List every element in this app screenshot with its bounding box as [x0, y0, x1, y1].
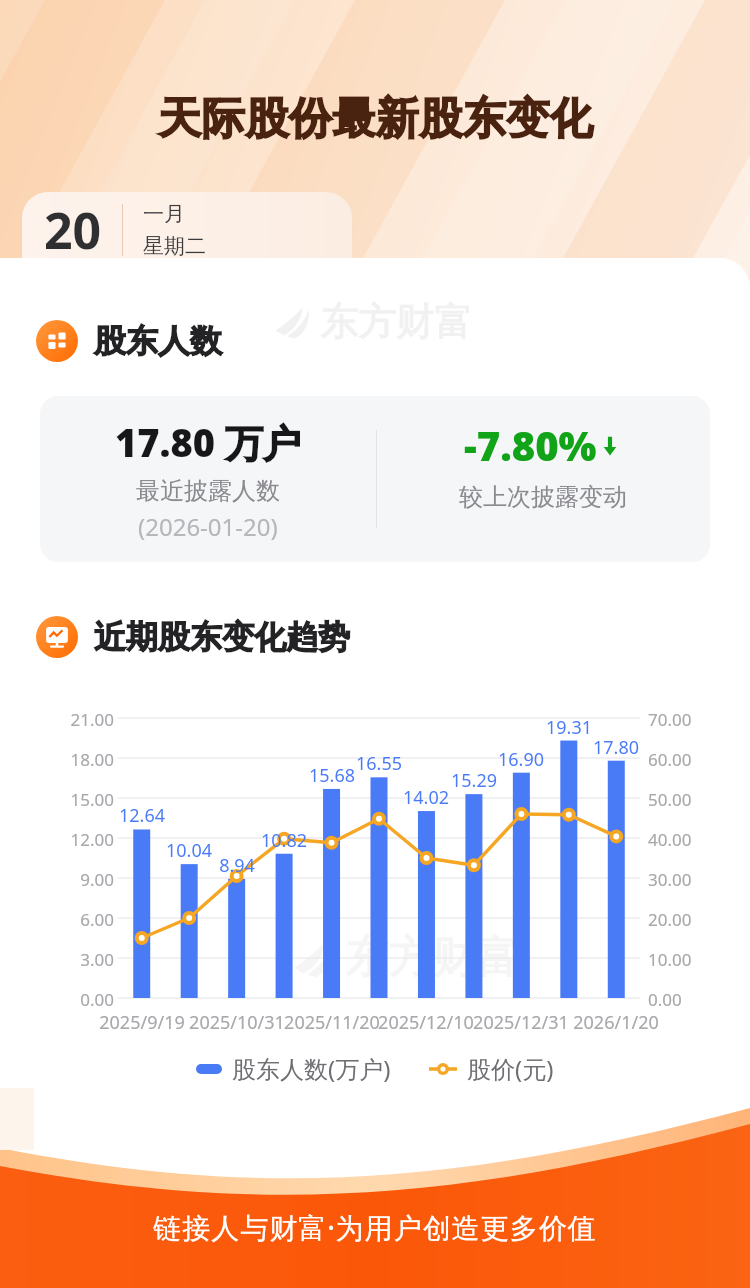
staticText: 东方财富	[320, 298, 472, 346]
staticText: 近期股东变化趋势	[94, 617, 350, 657]
staticText: 15.29	[444, 768, 504, 793]
staticText: 股东人数(万户)	[232, 1052, 391, 1085]
staticText: 0.00	[62, 988, 114, 1011]
staticText: 东方财富	[345, 930, 520, 985]
staticText: 2025/9/19	[92, 1010, 192, 1035]
staticText: 17.80 万户	[115, 416, 301, 468]
button[interactable]: 17.80 万户	[40, 396, 710, 562]
staticText: 30.00	[648, 868, 692, 891]
staticText: 16.90	[491, 747, 551, 772]
staticText: 20	[44, 196, 102, 264]
staticText: 19.31	[539, 715, 599, 740]
staticText: 3.00	[62, 948, 114, 971]
staticText: (2026-01-20)	[138, 510, 278, 543]
staticText: 星期二	[143, 233, 206, 259]
staticText: 18.00	[62, 748, 114, 771]
button[interactable]: 股价(元)	[429, 1052, 554, 1085]
staticText: 10.04	[159, 838, 219, 863]
staticText: 40.00	[648, 828, 692, 851]
staticText: -7.80%	[464, 418, 597, 472]
staticText: 一月	[143, 201, 185, 227]
staticText: 8.94	[207, 853, 267, 878]
staticText: 天际股份最新股东变化	[158, 92, 593, 146]
button[interactable]: 股东人数(万户)	[196, 1052, 391, 1085]
staticText: 链接人与财富·为用户创造更多价值	[153, 1208, 597, 1246]
button[interactable]: 股东人数	[36, 320, 222, 362]
staticText: 较上次披露变动	[459, 482, 627, 512]
staticText: 2025/10/31	[187, 1010, 287, 1035]
staticText: 20.00	[648, 908, 692, 931]
staticText: 10.00	[648, 948, 692, 971]
staticText: 12.64	[112, 803, 172, 828]
button[interactable]: 近期股东变化趋势	[36, 616, 350, 658]
staticText: 0.00	[648, 988, 682, 1011]
staticText: 股东人数	[94, 321, 222, 361]
staticText: 50.00	[648, 788, 692, 811]
staticText: 16.55	[349, 751, 409, 776]
staticText: 9.00	[62, 868, 114, 891]
staticText: 2026/1/20	[566, 1010, 666, 1035]
staticText: 70.00	[648, 708, 692, 731]
staticText: 60.00	[648, 748, 692, 771]
staticText: 2025/12/31	[471, 1010, 571, 1035]
staticText: 10.82	[254, 828, 314, 853]
staticText: 股价(元)	[467, 1052, 554, 1085]
staticText: 21.00	[62, 708, 114, 731]
staticText: 2025/12/10	[376, 1010, 476, 1035]
staticText: 14.02	[396, 785, 456, 810]
staticText: 12.00	[62, 828, 114, 851]
staticText: 6.00	[62, 908, 114, 931]
other: 股东人数	[36, 320, 78, 362]
other: 近期股东变化趋势	[36, 616, 78, 658]
staticText: 15.00	[62, 788, 114, 811]
staticText: 15.68	[302, 763, 362, 788]
staticText: 17.80	[586, 735, 646, 760]
staticText: 最近披露人数	[136, 476, 280, 506]
staticText: 2025/11/20	[282, 1010, 382, 1035]
